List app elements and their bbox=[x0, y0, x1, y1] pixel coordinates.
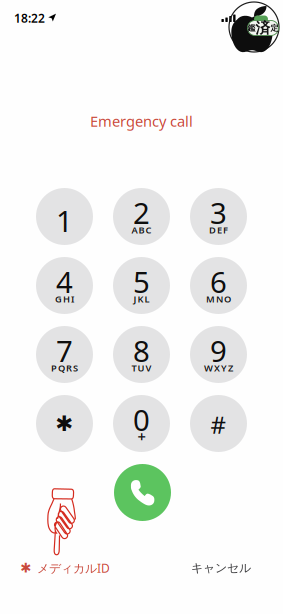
staticText: 鑑 bbox=[247, 23, 255, 33]
staticText: 0 bbox=[133, 400, 150, 439]
staticText: P Q R S bbox=[51, 362, 78, 374]
staticText: 定 bbox=[270, 23, 278, 33]
staticText: 1 bbox=[56, 201, 73, 240]
staticText: # bbox=[210, 409, 226, 440]
button[interactable]: 5 bbox=[113, 257, 170, 314]
staticText: A B C bbox=[131, 224, 151, 236]
staticText: キャンセル bbox=[191, 561, 251, 575]
staticText: 6 bbox=[210, 262, 227, 301]
button[interactable]: Call bbox=[114, 464, 171, 521]
button[interactable]: 6 bbox=[190, 257, 247, 314]
staticText: 2 bbox=[133, 193, 150, 232]
staticText: T U V bbox=[131, 362, 151, 374]
staticText: G H I bbox=[55, 293, 74, 305]
button[interactable]: キャンセル bbox=[191, 557, 251, 579]
button[interactable]: # bbox=[190, 395, 247, 452]
staticText: メディカルID bbox=[37, 560, 110, 576]
button[interactable]: 0 bbox=[113, 395, 170, 452]
staticText: 3 bbox=[210, 193, 227, 232]
staticText: 7 bbox=[56, 331, 73, 370]
staticText: 4 bbox=[56, 262, 73, 301]
staticText: 5 bbox=[133, 262, 150, 301]
button[interactable]: ✱ bbox=[36, 395, 93, 452]
button[interactable]: ✱ bbox=[20, 557, 110, 579]
staticText: W X Y Z bbox=[204, 362, 233, 374]
staticText: D E F bbox=[209, 224, 228, 236]
staticText: + bbox=[137, 427, 145, 446]
staticText: 9 bbox=[210, 331, 227, 370]
button[interactable]: 7 bbox=[36, 326, 93, 383]
staticText: J K L bbox=[133, 293, 149, 305]
button[interactable]: 3 bbox=[190, 188, 247, 245]
staticText: 18:22 bbox=[14, 10, 45, 26]
staticText: ✱ bbox=[20, 560, 31, 575]
staticText: 済 bbox=[255, 19, 270, 37]
button[interactable]: 2 bbox=[113, 188, 170, 245]
staticText: Emergency call bbox=[90, 111, 193, 131]
staticText: 8 bbox=[133, 331, 150, 370]
button[interactable]: 4 bbox=[36, 257, 93, 314]
button[interactable]: 8 bbox=[113, 326, 170, 383]
staticText: ✱ bbox=[55, 411, 73, 436]
staticText: M N O bbox=[206, 293, 231, 305]
button[interactable]: 1 bbox=[36, 188, 93, 245]
button[interactable]: 9 bbox=[190, 326, 247, 383]
